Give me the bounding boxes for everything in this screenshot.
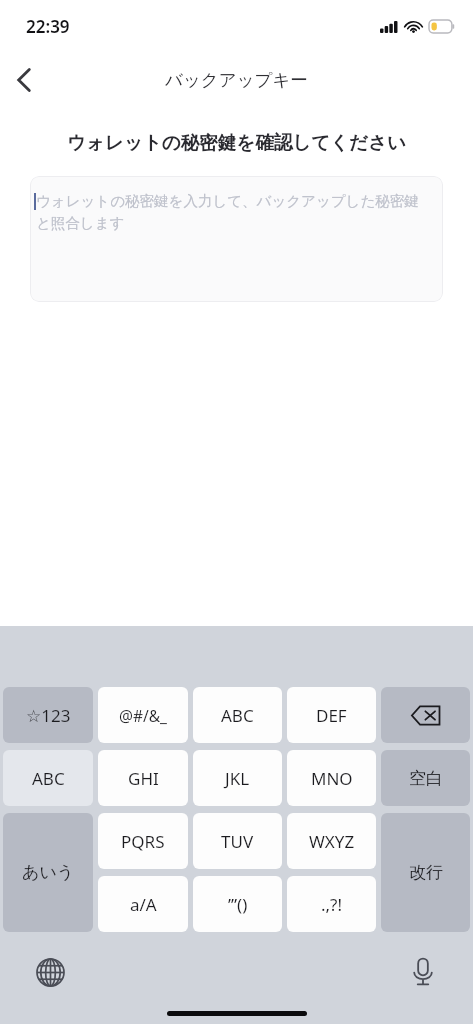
button[interactable]: TUV <box>193 813 282 869</box>
staticText: @#/&_ <box>119 705 167 726</box>
staticText: PQRS <box>121 830 165 853</box>
button[interactable]: 空白 <box>381 750 470 806</box>
staticText: 空白 <box>409 768 443 789</box>
staticText: a/A <box>130 893 157 916</box>
button[interactable]: ABC <box>3 750 93 806</box>
button[interactable]: ’”() <box>193 876 282 932</box>
staticText: MNO <box>311 767 353 790</box>
staticText: GHI <box>128 767 159 790</box>
button[interactable]: GHI <box>98 750 188 806</box>
button[interactable]: JKL <box>193 750 282 806</box>
staticText: 改行 <box>409 862 443 883</box>
staticText: .,?! <box>321 893 343 916</box>
staticText: TUV <box>221 830 254 853</box>
staticText: あいう <box>22 862 75 883</box>
staticText: DEF <box>316 704 347 727</box>
staticText: ウォレットの秘密鍵を確認してください <box>0 131 473 154</box>
button[interactable]: ☆123 <box>3 687 93 743</box>
button[interactable]: MNO <box>287 750 376 806</box>
staticText: WXYZ <box>309 830 355 853</box>
staticText: ウォレットの秘密鍵を入力して、バックアップした秘密鍵と照合します <box>36 192 429 233</box>
button[interactable]: a/A <box>98 876 188 932</box>
button[interactable]: 改行 <box>381 813 470 932</box>
button[interactable]: Back <box>0 56 48 104</box>
button[interactable]: PQRS <box>98 813 188 869</box>
staticText: ABC <box>221 704 254 727</box>
button[interactable]: ウォレットの秘密鍵を入力して、バックアップした秘密鍵と照合します <box>30 176 443 302</box>
staticText: ABC <box>32 767 65 790</box>
staticText: バックアップキー <box>165 69 308 91</box>
button[interactable]: .,?! <box>287 876 376 932</box>
staticText: ’”() <box>228 893 248 916</box>
staticText: 22:39 <box>26 15 70 38</box>
button[interactable]: あいう <box>3 813 93 932</box>
button[interactable]: Dictation <box>399 948 447 996</box>
button[interactable]: @#/&_ <box>98 687 188 743</box>
button[interactable]: Change keyboard <box>26 948 74 996</box>
button[interactable]: DEF <box>287 687 376 743</box>
button[interactable]: Delete <box>381 687 470 743</box>
button[interactable]: ABC <box>193 687 282 743</box>
button[interactable]: WXYZ <box>287 813 376 869</box>
staticText: ☆123 <box>26 704 71 727</box>
staticText: JKL <box>225 767 250 790</box>
